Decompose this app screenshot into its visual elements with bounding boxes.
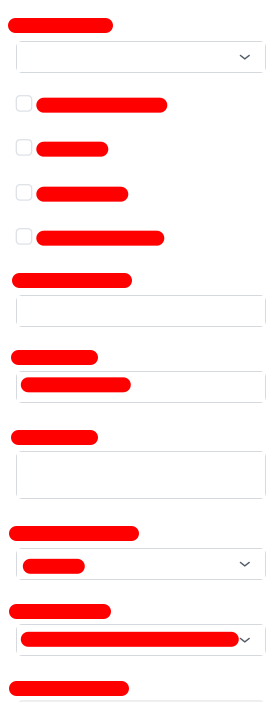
button[interactable]: Checkbox option: [16, 140, 265, 157]
button[interactable]: Checkbox option: [16, 96, 265, 113]
button[interactable]: Select an option: [17, 549, 265, 579]
button[interactable]: Checkbox option: [16, 229, 265, 246]
button[interactable]: Checkbox option: [16, 185, 265, 202]
button[interactable]: Select an option: [17, 42, 265, 72]
button[interactable]: Text field: [17, 372, 265, 402]
button[interactable]: Select an option: [17, 625, 265, 655]
